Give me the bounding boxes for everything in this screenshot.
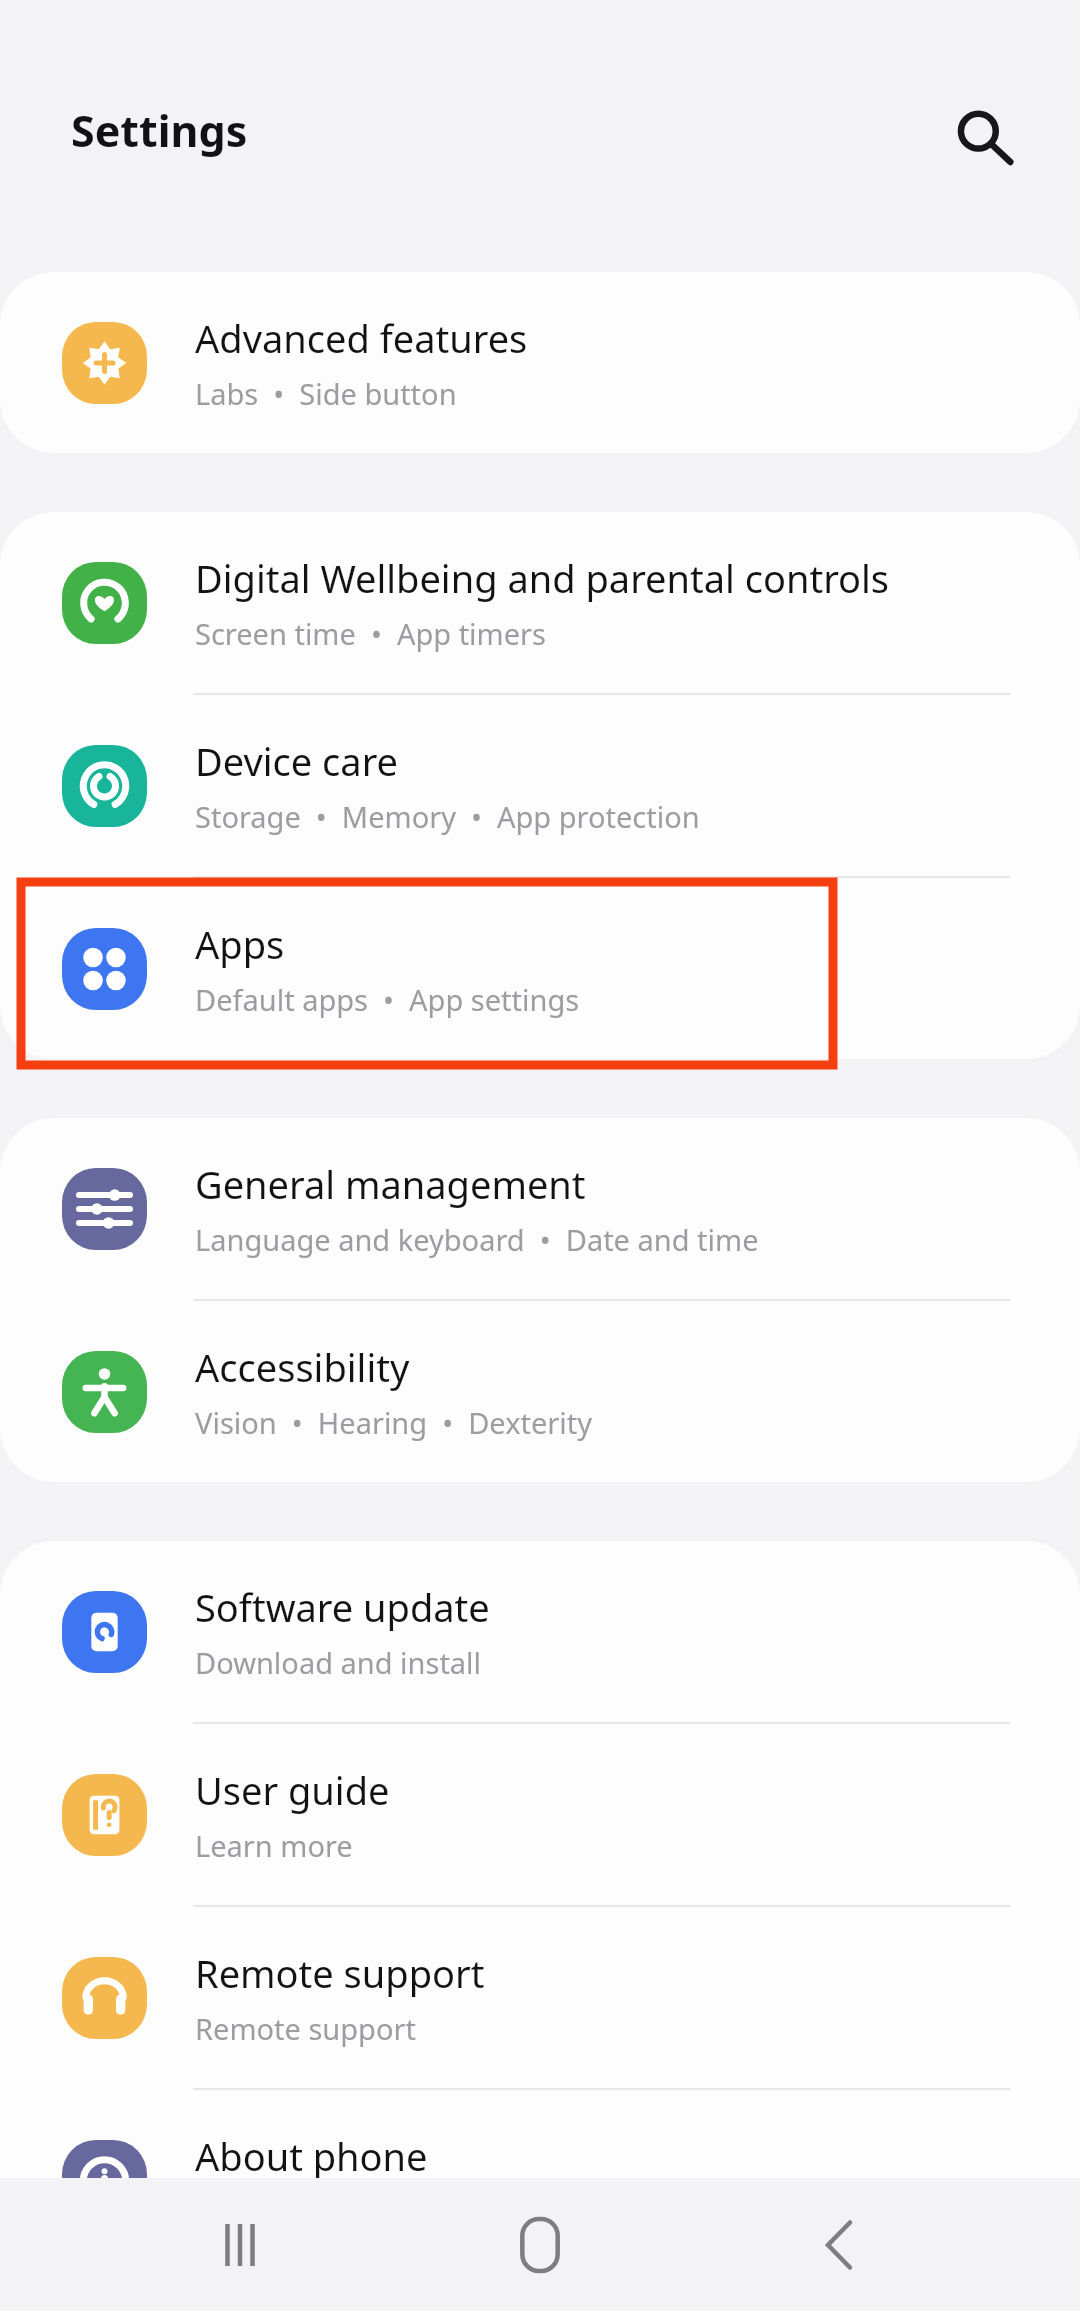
button[interactable]: Remote support <box>0 1907 1080 2088</box>
staticText: Accessibility <box>195 1341 410 1393</box>
staticText: Apps <box>195 918 285 970</box>
button[interactable]: General management <box>0 1118 1080 1299</box>
staticText: Status • Legal <box>195 2192 395 2231</box>
staticText: Software update <box>195 1581 490 1633</box>
button[interactable]: Back <box>785 2190 895 2300</box>
staticText: General management <box>195 1158 586 1210</box>
staticText: Screen time • App timers <box>195 614 546 653</box>
staticText: Default apps • App settings <box>195 980 580 1019</box>
staticText: Settings <box>71 101 248 160</box>
staticText: Language and keyboard • Date and time <box>195 1220 759 1259</box>
button[interactable]: User guide <box>0 1724 1080 1905</box>
staticText: Remote support <box>195 2009 416 2048</box>
staticText: User guide <box>195 1764 390 1816</box>
button[interactable]: Software update <box>0 1541 1080 1722</box>
staticText: Device care <box>195 735 398 787</box>
button[interactable]: Advanced features <box>0 272 1080 453</box>
staticText: Storage • Memory • App protection <box>195 797 700 836</box>
button[interactable]: Apps <box>0 878 1080 1059</box>
staticText: About phone <box>195 2130 428 2182</box>
staticText: Vision • Hearing • Dexterity <box>195 1403 593 1442</box>
staticText: Remote support <box>195 1947 485 1999</box>
button[interactable]: Recents <box>185 2190 295 2300</box>
staticText: Download and install <box>195 1643 482 1682</box>
staticText: Digital Wellbeing and parental controls <box>195 552 890 604</box>
button[interactable]: Home <box>485 2190 595 2300</box>
staticText: Labs • Side button <box>195 374 457 413</box>
button[interactable]: Search <box>942 96 1024 178</box>
button[interactable]: Digital Wellbeing and parental controls <box>0 512 1080 693</box>
button[interactable]: Accessibility <box>0 1301 1080 1482</box>
staticText: Advanced features <box>195 312 528 364</box>
button[interactable]: About phone <box>0 2090 1080 2271</box>
staticText: Learn more <box>195 1826 353 1865</box>
button[interactable]: Device care <box>0 695 1080 876</box>
